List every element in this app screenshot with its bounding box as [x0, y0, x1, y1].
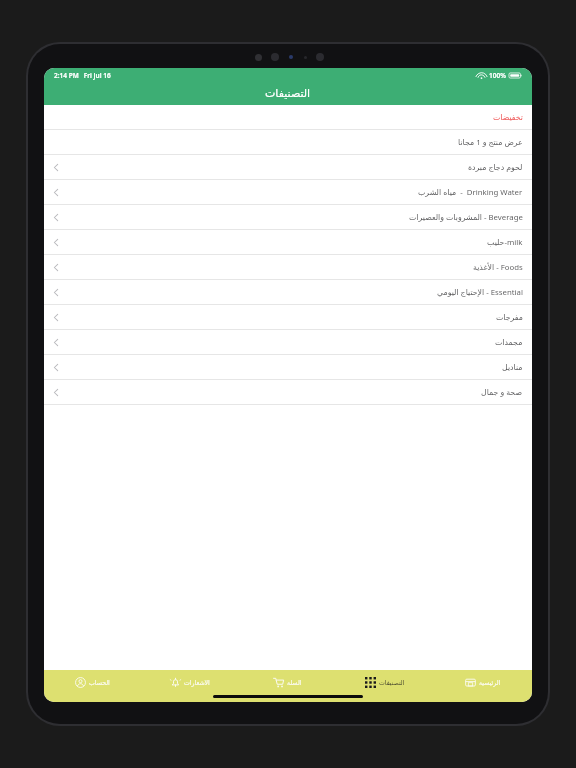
staticText: تخفيضات — [493, 113, 523, 122]
staticText: الإحتياج اليومي - Essential — [437, 287, 523, 298]
button[interactable]: الرئيسية — [434, 670, 532, 694]
staticText: السلة — [287, 679, 302, 686]
staticText: مفرجات — [496, 313, 523, 322]
staticText: مياه الشرب - Drinking Water — [418, 187, 523, 198]
button[interactable]: مياه الشرب - Drinking Water — [44, 180, 532, 204]
staticText: مجمدات — [495, 338, 523, 347]
staticText: مناديل — [502, 363, 523, 372]
staticText: الاشعارات — [184, 679, 210, 686]
button[interactable]: لحوم دجاج مبردة — [44, 155, 532, 179]
button[interactable]: مفرجات — [44, 305, 532, 329]
button[interactable]: تخفيضات — [44, 105, 532, 129]
staticText: 100% — [489, 71, 506, 80]
button[interactable]: مجمدات — [44, 330, 532, 354]
button[interactable]: الحساب — [44, 670, 141, 694]
staticText: الأغذية - Foods — [473, 262, 523, 273]
button[interactable]: الإحتياج اليومي - Essential — [44, 280, 532, 304]
staticText: التصنيفات — [379, 679, 405, 686]
staticText: لحوم دجاج مبردة — [468, 162, 523, 173]
button[interactable]: الاشعارات — [141, 670, 238, 694]
staticText: المشروبات والعصيرات - Beverage — [409, 212, 523, 223]
button[interactable]: التصنيفات — [336, 670, 434, 694]
button[interactable]: الأغذية - Foods — [44, 255, 532, 279]
button[interactable]: حليب-milk — [44, 230, 532, 254]
button[interactable]: السلة — [238, 670, 336, 694]
staticText: صحة و جمال — [481, 387, 523, 398]
button[interactable]: صحة و جمال — [44, 380, 532, 404]
staticText: عرض منتج و 1 مجانا — [458, 137, 523, 148]
button[interactable]: عرض منتج و 1 مجانا — [44, 130, 532, 154]
staticText: حليب-milk — [487, 237, 523, 248]
staticText: الرئيسية — [479, 679, 501, 686]
staticText: 2:14 PM Fri Jul 16 — [54, 71, 111, 80]
button[interactable]: مناديل — [44, 355, 532, 379]
button[interactable]: المشروبات والعصيرات - Beverage — [44, 205, 532, 229]
staticText: الحساب — [89, 679, 110, 686]
staticText: التصنيفات — [265, 87, 311, 100]
